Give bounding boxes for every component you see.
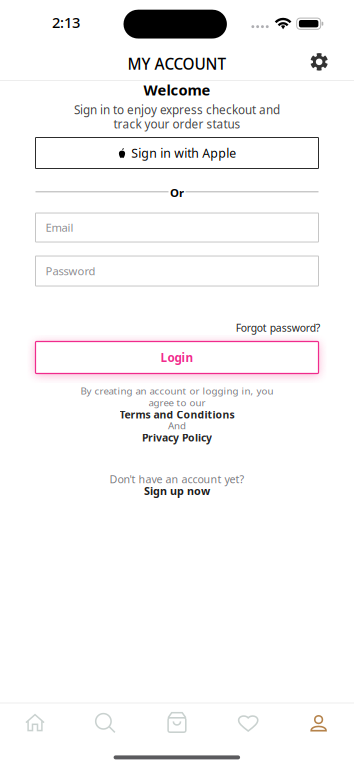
staticText: By creating an account or logging in, yo… [80, 384, 273, 397]
button[interactable]: Sign up now [0, 483, 354, 498]
button[interactable]: Login [35, 341, 318, 373]
staticText: track your order status [113, 116, 240, 132]
staticText: Sign up now [144, 483, 210, 498]
staticText: 2:13 [52, 12, 80, 32]
button[interactable]: Wishlist [230, 706, 267, 740]
button[interactable]: Sign in with Apple [35, 137, 318, 168]
button[interactable]: My account [302, 707, 335, 739]
staticText: Welcome [143, 80, 210, 100]
staticText: Terms and Conditions [119, 407, 234, 422]
staticText: Forgot password? [236, 321, 321, 335]
staticText: And [168, 419, 186, 432]
button[interactable]: Privacy Policy [0, 430, 354, 445]
staticText: Don't have an account yet? [109, 472, 244, 486]
staticText: Login [160, 349, 193, 365]
staticText: Privacy Policy [142, 430, 212, 445]
staticText: Or [170, 185, 184, 200]
button[interactable]: Home [17, 706, 53, 739]
button[interactable]: Search [88, 705, 124, 741]
button[interactable]: Settings [306, 49, 332, 75]
button[interactable]: Forgot password? [236, 321, 321, 335]
button[interactable]: Terms and Conditions [0, 407, 354, 422]
staticText: MY ACCOUNT [127, 53, 226, 74]
staticText: Sign in to enjoy express checkout and [74, 102, 280, 118]
staticText: Sign in with Apple [131, 145, 236, 161]
staticText: Password [45, 263, 95, 279]
staticText: Email [45, 220, 73, 235]
button[interactable]: Shopping bag [159, 704, 195, 741]
staticText: agree to our [148, 396, 205, 409]
